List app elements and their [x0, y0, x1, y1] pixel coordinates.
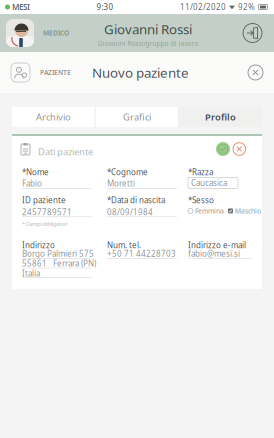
button[interactable]: Archivio: [12, 107, 95, 127]
staticText: MEDICO: [43, 29, 69, 37]
button[interactable]: Chiudi: [248, 65, 263, 80]
staticText: *Data di nascita: [107, 195, 165, 205]
staticText: 92%: [238, 2, 255, 12]
staticText: Giovanni Rossi: [104, 20, 192, 38]
staticText: 2457789571: [22, 207, 72, 217]
staticText: fabio@mesi.si: [188, 248, 240, 259]
staticText: * Campi obbligatori: [22, 220, 67, 227]
staticText: *Cognome: [107, 167, 148, 177]
staticText: MESI: [12, 2, 30, 12]
button[interactable]: Annulla: [233, 143, 246, 155]
staticText: Femmina: [195, 206, 224, 215]
staticText: Borgo Palmieri 575: [22, 248, 94, 259]
staticText: PAZIENTE: [40, 68, 71, 77]
staticText: Maschio: [235, 206, 261, 215]
staticText: 11/02/2020: [180, 2, 226, 12]
staticText: Moretti: [107, 178, 135, 189]
staticText: Archivio: [36, 111, 71, 123]
staticText: Num. tel.: [107, 240, 141, 250]
staticText: Grafici: [123, 111, 151, 123]
staticText: Indirizzo e-mail: [188, 240, 246, 250]
staticText: *Razza: [188, 167, 213, 177]
staticText: Dati paziente: [38, 145, 93, 158]
staticText: Italia: [22, 268, 40, 279]
staticText: 08/09/1984: [107, 207, 153, 217]
staticText: Profilo: [205, 111, 236, 123]
button[interactable]: Grafici: [96, 107, 178, 127]
staticText: Indirizzo: [22, 240, 55, 250]
staticText: 9:30: [96, 2, 113, 12]
button[interactable]: Profilo: [179, 107, 262, 127]
staticText: *Nome: [22, 167, 49, 177]
staticText: Nuovo paziente: [92, 64, 189, 81]
staticText: ID paziente: [22, 195, 66, 205]
staticText: +50 71 44228703: [107, 248, 176, 259]
staticText: Caucasica: [191, 178, 227, 188]
staticText: 55861 Ferrara (PN): [22, 258, 96, 269]
button[interactable]: Logout: [243, 23, 262, 42]
staticText: Giovanni Rossi/gruppo di lavoro: [97, 39, 198, 48]
staticText: *Sesso: [188, 195, 214, 205]
staticText: Fabio: [22, 178, 42, 189]
button[interactable]: Conferma: [216, 142, 230, 156]
